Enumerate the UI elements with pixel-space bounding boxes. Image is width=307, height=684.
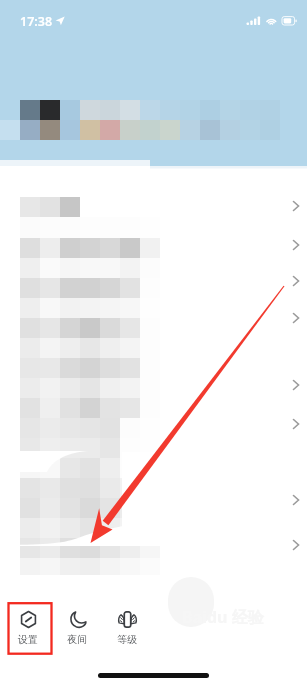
button[interactable]: 等级 [105, 604, 148, 653]
button[interactable]: 夜间 [55, 604, 98, 653]
staticText: 夜间 [67, 633, 87, 646]
staticText: 17:38 [20, 13, 53, 30]
button[interactable]: 设置 [6, 604, 49, 653]
staticText: 等级 [117, 633, 137, 646]
staticText: 设置 [18, 633, 38, 646]
staticText: Baidu 经验 [182, 606, 264, 628]
